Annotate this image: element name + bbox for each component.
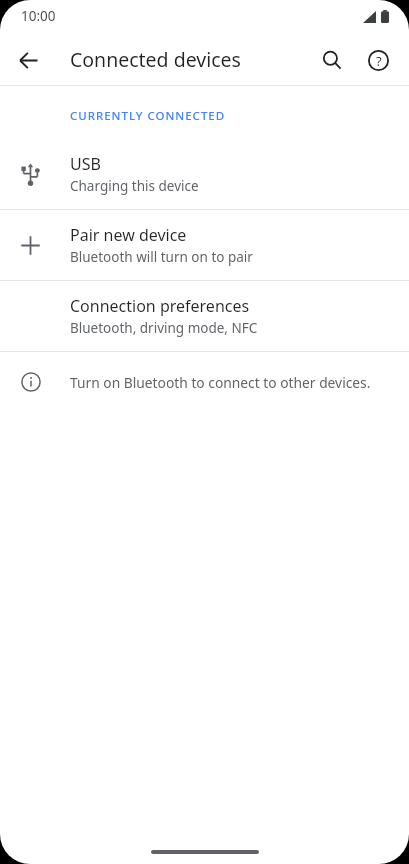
button[interactable]: Pair new device	[0, 210, 409, 280]
staticText: USB	[70, 153, 101, 175]
staticText: Connected devices	[70, 46, 241, 73]
staticText: Connection preferences	[70, 295, 250, 317]
button[interactable]: USB	[0, 139, 409, 209]
staticText: Bluetooth will turn on to pair	[70, 248, 253, 266]
button[interactable]: Connection preferences	[0, 281, 409, 351]
staticText: 10:00	[21, 7, 56, 25]
staticText: CURRENTLY CONNECTED	[70, 108, 226, 124]
button[interactable]: Back	[8, 40, 48, 80]
staticText: Charging this device	[70, 177, 199, 195]
staticText: Turn on Bluetooth to connect to other de…	[70, 373, 371, 392]
staticText: ?	[376, 52, 382, 70]
staticText: Bluetooth, driving mode, NFC	[70, 319, 258, 337]
button[interactable]: Search	[311, 39, 353, 81]
button[interactable]: Help	[357, 39, 399, 81]
staticText: Pair new device	[70, 224, 187, 246]
